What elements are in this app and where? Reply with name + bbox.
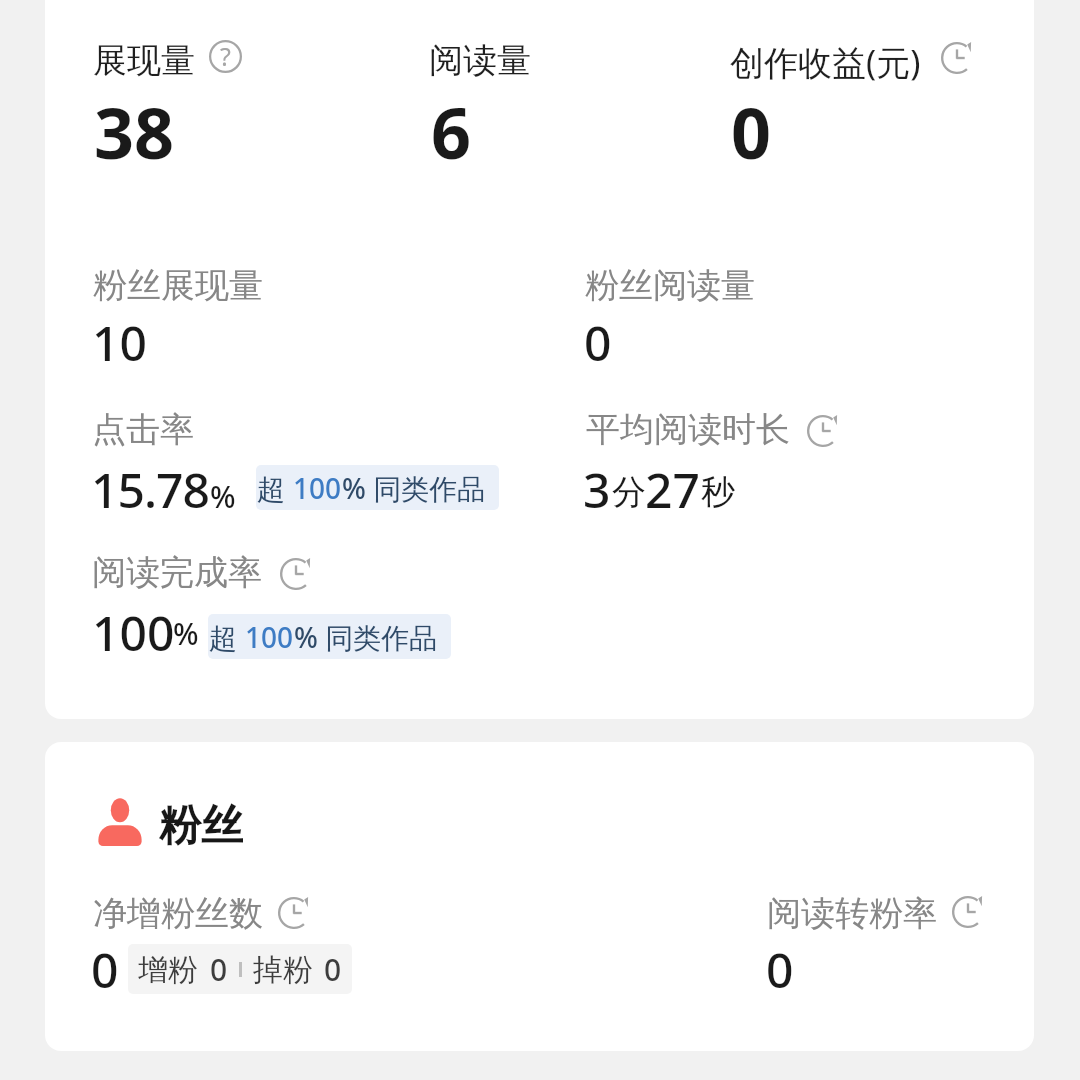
button[interactable]: 粉丝展现量 [92, 264, 282, 368]
staticText: 粉丝 [159, 800, 243, 852]
button[interactable]: 点击率 [91, 408, 503, 516]
staticText: 0 [766, 937, 794, 1002]
staticText: 掉粉 [253, 951, 313, 989]
button[interactable]: 超 [208, 614, 451, 659]
staticText: 10 [92, 310, 147, 375]
button[interactable]: 数据更新说明 [805, 412, 841, 448]
staticText: 平均阅读时长 [586, 408, 790, 451]
button[interactable]: 粉丝阅读量 [584, 264, 774, 368]
staticText: 展现量 [93, 39, 195, 82]
staticText: 点击率 [92, 408, 194, 451]
button[interactable]: 数据更新说明 [950, 893, 986, 929]
staticText: 3 [583, 457, 611, 522]
button[interactable]: 平均阅读时长 [583, 408, 845, 516]
staticText: 超 [257, 469, 293, 507]
button[interactable]: 数据更新说明 [276, 894, 312, 930]
staticText: ? [220, 39, 231, 72]
staticText: 100 [245, 618, 294, 656]
button[interactable]: 创作收益(元) [730, 39, 978, 163]
button[interactable]: 增粉 [128, 944, 352, 994]
staticText: 净增粉丝数 [93, 892, 263, 935]
staticText: 分 [612, 471, 646, 514]
staticText: 粉丝展现量 [93, 264, 263, 307]
button[interactable]: 阅读转粉率 [766, 892, 988, 996]
button[interactable]: 指标说明 [209, 40, 242, 73]
button[interactable]: 数据更新说明 [278, 555, 314, 591]
staticText: 6 [431, 84, 472, 179]
staticText: 38 [94, 84, 175, 179]
staticText: % [210, 476, 236, 517]
staticText: 超 [209, 618, 245, 656]
button[interactable]: 展现量 [93, 39, 245, 163]
staticText: 15.78 [91, 457, 209, 522]
staticText: 0 [324, 949, 342, 990]
staticText: 100 [92, 600, 175, 665]
staticText: % 同类作品 [294, 618, 438, 656]
button[interactable]: 阅读量 [429, 39, 549, 163]
staticText: 阅读完成率 [92, 551, 262, 594]
staticText: 粉丝阅读量 [585, 264, 755, 307]
staticText: 27 [645, 457, 700, 522]
staticText: 增粉 [138, 951, 198, 989]
button[interactable]: 阅读完成率 [92, 551, 453, 663]
staticText: % [173, 613, 199, 654]
button[interactable]: 超 [256, 465, 499, 510]
staticText: 0 [210, 949, 228, 990]
button[interactable]: 净增粉丝数 [91, 892, 361, 996]
button[interactable]: 数据更新说明 [939, 39, 975, 75]
staticText: % 同类作品 [342, 469, 486, 507]
staticText: 0 [91, 937, 119, 1002]
staticText: 100 [293, 469, 342, 507]
button[interactable]: 粉丝 [97, 797, 247, 849]
staticText: 创作收益(元) [730, 39, 921, 85]
staticText: 阅读转粉率 [767, 892, 937, 935]
staticText: 阅读量 [429, 39, 531, 82]
staticText: 秒 [701, 471, 735, 514]
staticText: 0 [584, 310, 612, 375]
staticText: 0 [731, 84, 772, 179]
